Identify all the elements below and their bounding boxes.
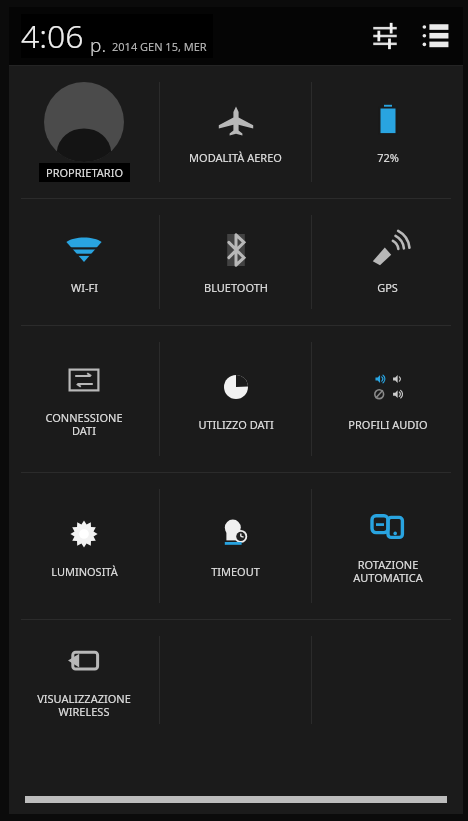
staticText: PROPRIETARIO bbox=[46, 165, 123, 180]
button[interactable]: Proprietario bbox=[9, 66, 159, 198]
staticText: LUMINOSITÀ bbox=[51, 564, 118, 579]
staticText: ROTAZIONE AUTOMATICA bbox=[353, 557, 423, 585]
staticText: TIMEOUT bbox=[211, 564, 260, 579]
button[interactable]: ROTAZIONE AUTOMATICA bbox=[312, 473, 463, 619]
staticText: GPS bbox=[377, 280, 398, 295]
staticText: WI-FI bbox=[71, 280, 98, 295]
button[interactable]: Chiudi pannello bbox=[9, 784, 463, 814]
button[interactable]: Notifiche bbox=[417, 18, 453, 54]
staticText: MODALITÀ AEREO bbox=[189, 150, 282, 165]
staticText: 4:06 bbox=[21, 14, 84, 58]
button[interactable]: BLUETOOTH bbox=[160, 199, 311, 325]
button[interactable]: Impostazioni bbox=[367, 18, 403, 54]
button[interactable]: UTILIZZO DATI bbox=[160, 326, 311, 472]
button[interactable]: CONNESSIONE DATI bbox=[9, 326, 159, 472]
staticText: CONNESSIONE DATI bbox=[45, 410, 123, 438]
staticText: UTILIZZO DATI bbox=[198, 417, 274, 432]
staticText: 72% bbox=[377, 150, 399, 165]
staticText: 2014 GEN 15, MER bbox=[112, 39, 207, 54]
button[interactable]: LUMINOSITÀ bbox=[9, 473, 159, 619]
staticText: p. bbox=[90, 32, 107, 58]
staticText: BLUETOOTH bbox=[204, 280, 268, 295]
button[interactable]: TIMEOUT bbox=[160, 473, 311, 619]
button[interactable]: GPS bbox=[312, 199, 463, 325]
button[interactable]: VISUALIZZAZIONE WIRELESS bbox=[9, 620, 159, 740]
staticText: VISUALIZZAZIONE WIRELESS bbox=[37, 691, 131, 719]
button[interactable]: PROFILI AUDIO bbox=[312, 326, 463, 472]
button[interactable]: WI-FI bbox=[9, 199, 159, 325]
staticText: PROFILI AUDIO bbox=[348, 417, 428, 432]
button[interactable]: MODALITÀ AEREO bbox=[160, 66, 311, 198]
button[interactable]: 72% bbox=[312, 66, 463, 198]
